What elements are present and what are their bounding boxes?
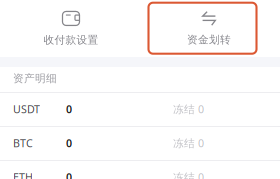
staticText: BTC [13,136,33,150]
staticText: 冻结 0 [173,170,204,179]
staticText: 资产明细 [13,72,57,85]
staticText: ETH [13,170,33,179]
staticText: USDT [13,102,40,116]
staticText: 0 [66,136,72,150]
staticText: 资金划转 [187,33,231,46]
staticText: 冻结 0 [173,136,204,150]
button[interactable]: 资金划转 [153,5,265,52]
button[interactable]: 收付款设置 [15,5,127,52]
staticText: 0 [66,102,72,116]
staticText: 0 [66,170,72,179]
staticText: 收付款设置 [43,33,98,46]
staticText: 冻结 0 [173,102,204,116]
